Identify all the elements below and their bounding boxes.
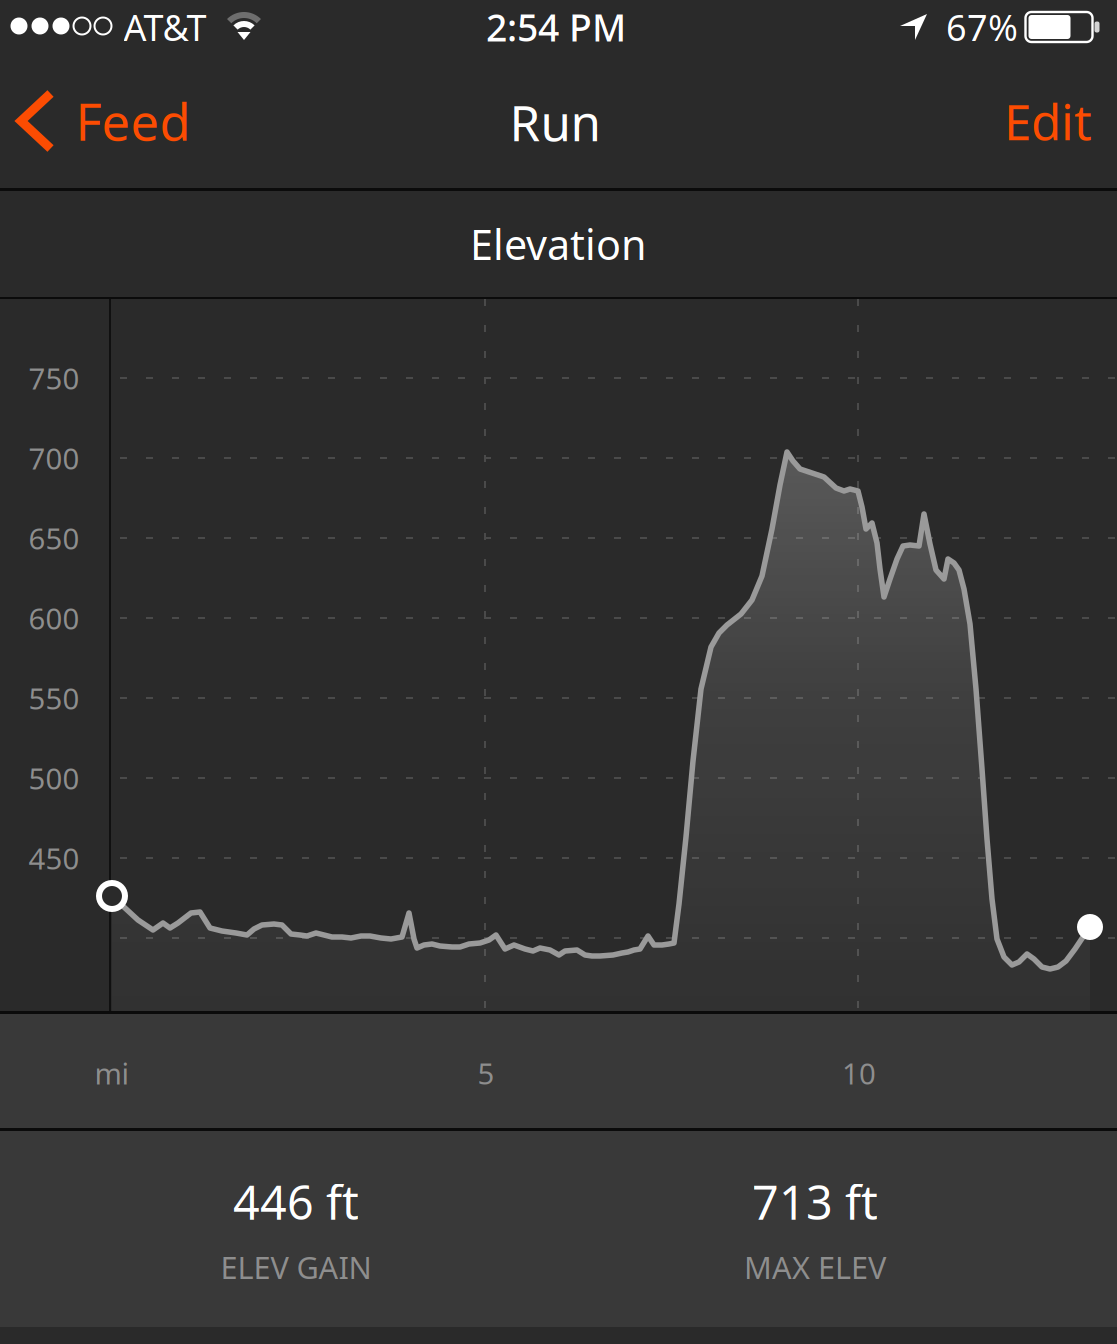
- staticText: ELEV GAIN: [220, 1247, 371, 1287]
- staticText: Run: [509, 89, 600, 155]
- staticText: 650: [28, 518, 79, 557]
- staticText: 500: [28, 758, 79, 797]
- staticText: 5: [477, 1053, 494, 1092]
- staticText: mi: [94, 1053, 129, 1092]
- staticText: 750: [28, 358, 79, 397]
- staticText: Edit: [1004, 88, 1092, 154]
- staticText: 700: [28, 438, 79, 477]
- staticText: 550: [28, 678, 79, 717]
- staticText: 2:54 PM: [486, 2, 626, 52]
- button[interactable]: Edit: [976, 58, 1117, 184]
- staticText: 446 ft: [233, 1171, 359, 1233]
- staticText: 67%: [946, 3, 1018, 51]
- staticText: AT&T: [123, 3, 206, 51]
- staticText: 600: [28, 598, 79, 637]
- staticText: 10: [842, 1053, 876, 1092]
- staticText: MAX ELEV: [744, 1247, 886, 1287]
- button[interactable]: Feed: [0, 58, 208, 184]
- staticText: Feed: [75, 87, 190, 155]
- staticText: 450: [28, 838, 79, 877]
- staticText: 713 ft: [752, 1171, 878, 1233]
- staticText: Elevation: [470, 217, 647, 271]
